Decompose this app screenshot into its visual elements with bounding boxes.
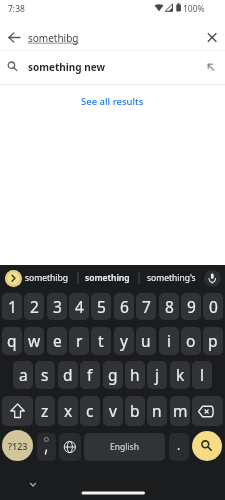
button[interactable]: n — [147, 396, 167, 426]
staticText: 3 — [53, 296, 62, 317]
button[interactable]: i — [159, 327, 179, 355]
button[interactable]: 6 — [114, 293, 134, 320]
staticText: something new — [28, 60, 106, 74]
staticText: 8 — [165, 296, 174, 317]
staticText: s — [41, 364, 49, 385]
staticText: e — [53, 330, 62, 351]
button[interactable]: 4 — [69, 293, 89, 320]
button[interactable]: a — [13, 361, 33, 389]
button[interactable]: 2 — [24, 293, 44, 320]
staticText: t — [98, 330, 104, 351]
staticText: r — [76, 330, 83, 351]
button[interactable]: u — [136, 327, 156, 355]
staticText: u — [141, 330, 151, 351]
button[interactable]: c — [80, 396, 100, 426]
button[interactable]: w — [24, 327, 44, 355]
button[interactable]: d — [58, 361, 78, 389]
button[interactable]: 3 — [47, 293, 67, 320]
button[interactable]: somethibg — [16, 265, 76, 291]
button[interactable]: ?123 — [2, 430, 33, 461]
button[interactable]: j — [147, 361, 167, 389]
staticText: o — [186, 330, 196, 351]
button[interactable] — [59, 433, 81, 461]
button[interactable]: g — [103, 361, 123, 389]
staticText: c — [86, 400, 94, 421]
staticText: p — [208, 330, 218, 351]
staticText: ?123 — [8, 440, 28, 452]
staticText: k — [176, 364, 185, 385]
button[interactable]: t — [91, 327, 111, 355]
staticText: z — [41, 400, 49, 421]
button[interactable]: s — [35, 361, 55, 389]
button[interactable]: See all results — [0, 85, 225, 116]
staticText: something — [85, 272, 130, 284]
staticText: f — [87, 364, 93, 385]
staticText: somethibg — [28, 31, 79, 45]
staticText: l — [200, 364, 204, 385]
button[interactable]: . — [169, 433, 189, 461]
button[interactable]: 7 — [136, 293, 156, 320]
staticText: 9 — [187, 296, 196, 317]
button[interactable]: b — [125, 396, 145, 426]
button[interactable]: z — [35, 396, 55, 426]
button[interactable]: 8 — [159, 293, 179, 320]
button[interactable]: something — [77, 265, 137, 291]
staticText: 1 — [8, 296, 17, 317]
button[interactable]: 9 — [181, 293, 201, 320]
staticText: 7 — [142, 296, 151, 317]
staticText: q — [7, 330, 17, 351]
button[interactable]: q — [2, 327, 22, 355]
button[interactable]: v — [103, 396, 123, 426]
button[interactable]: something's — [141, 265, 201, 291]
button[interactable] — [5, 270, 22, 287]
staticText: b — [130, 400, 140, 421]
button[interactable] — [204, 270, 221, 287]
button[interactable]: English — [84, 433, 165, 461]
button[interactable]: f — [80, 361, 100, 389]
staticText: y — [120, 330, 128, 351]
button[interactable]: r — [69, 327, 89, 355]
button[interactable] — [37, 433, 56, 461]
button[interactable]: l — [192, 361, 212, 389]
staticText: English — [110, 441, 139, 453]
staticText: i — [167, 330, 171, 351]
staticText: See all results — [81, 95, 144, 108]
staticText: . — [177, 437, 181, 453]
staticText: g — [108, 364, 118, 385]
staticText: j — [155, 364, 159, 385]
staticText: w — [28, 330, 41, 351]
staticText: 5 — [97, 296, 106, 317]
button[interactable]: m — [170, 396, 190, 426]
staticText: x — [64, 400, 73, 421]
button[interactable]: k — [170, 361, 190, 389]
staticText: h — [130, 364, 140, 385]
staticText: a — [19, 364, 28, 385]
staticText: somethibg — [25, 272, 68, 284]
staticText: 0 — [209, 296, 218, 317]
button[interactable]: h — [125, 361, 145, 389]
button[interactable] — [192, 431, 222, 461]
button[interactable]: 0 — [203, 293, 223, 320]
staticText: 7:38 — [8, 3, 25, 15]
button[interactable]: 5 — [91, 293, 111, 320]
button[interactable]: x — [58, 396, 78, 426]
staticText: v — [109, 400, 117, 421]
button[interactable] — [0, 51, 225, 84]
staticText: 2 — [30, 296, 39, 317]
button[interactable]: p — [203, 327, 223, 355]
staticText: 100% — [183, 3, 205, 15]
button[interactable] — [0, 18, 225, 51]
button[interactable]: 1 — [2, 293, 22, 320]
staticText: something's — [147, 272, 196, 284]
staticText: m — [173, 400, 188, 421]
button[interactable]: e — [47, 327, 67, 355]
button[interactable] — [2, 396, 33, 426]
staticText: n — [152, 400, 162, 421]
button[interactable]: o — [181, 327, 201, 355]
staticText: d — [63, 364, 73, 385]
button[interactable]: y — [114, 327, 134, 355]
staticText: 6 — [120, 296, 129, 317]
staticText: 4 — [75, 296, 84, 317]
button[interactable] — [192, 396, 223, 426]
